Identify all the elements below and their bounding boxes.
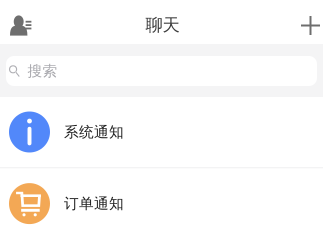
button[interactable]: 搜索 [0,44,323,97]
button[interactable]: 系统通知 [0,97,323,169]
button[interactable]: 订单通知 [0,169,323,231]
button[interactable]: Contacts [0,0,44,44]
staticText: 系统通知 [64,123,124,141]
button[interactable]: New chat [279,0,323,44]
staticText: 聊天 [145,14,179,36]
staticText: 订单通知 [64,195,124,213]
staticText: 搜索 [27,62,57,80]
